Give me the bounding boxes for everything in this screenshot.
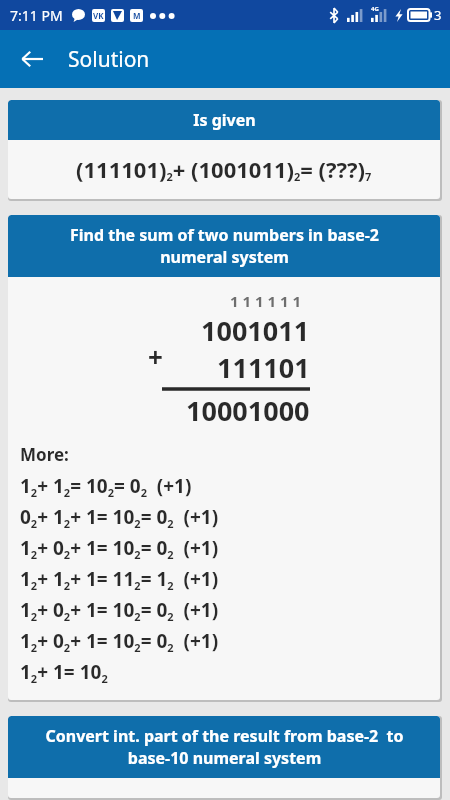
staticText: 7:11 PM bbox=[10, 6, 63, 25]
staticText: Is given bbox=[193, 109, 256, 131]
staticText: (111101)2+ (1001011)2= (???)7 bbox=[76, 154, 372, 185]
staticText: 12+ 02+ 1= 102= 02 (+1) bbox=[20, 597, 219, 624]
staticText: Convert int. part of the result from bas… bbox=[45, 725, 404, 769]
staticText: 12+ 12= 102= 02 (+1) bbox=[20, 473, 192, 500]
staticText: 02+ 12+ 1= 102= 02 (+1) bbox=[20, 504, 219, 531]
button[interactable]: Find the sum of two numbers in base-2 nu… bbox=[8, 215, 440, 277]
staticText: + bbox=[148, 339, 163, 374]
staticText: 12+ 1= 102 bbox=[20, 659, 108, 686]
staticText: 10001000 bbox=[186, 392, 310, 429]
staticText: M bbox=[133, 10, 141, 21]
button[interactable]: Convert int. part of the result from bas… bbox=[8, 716, 440, 778]
staticText: 111101 bbox=[217, 349, 310, 386]
button[interactable]: Is given bbox=[8, 100, 440, 140]
staticText: 4G bbox=[371, 5, 379, 13]
staticText: Solution bbox=[68, 45, 150, 74]
staticText: Find the sum of two numbers in base-2 nu… bbox=[70, 224, 379, 268]
staticText: 12+ 02+ 1= 102= 02 (+1) bbox=[20, 535, 219, 562]
staticText: 1001011 bbox=[201, 312, 310, 349]
button[interactable]: Back bbox=[10, 37, 54, 81]
staticText: 12+ 02+ 1= 102= 02 (+1) bbox=[20, 628, 219, 655]
staticText: 12+ 12+ 1= 112= 12 (+1) bbox=[20, 566, 219, 593]
staticText: VK bbox=[93, 10, 104, 21]
staticText: More: bbox=[20, 443, 69, 466]
staticText: 1 1 1 1 1 1 bbox=[230, 291, 301, 311]
staticText: 3 bbox=[434, 6, 442, 24]
